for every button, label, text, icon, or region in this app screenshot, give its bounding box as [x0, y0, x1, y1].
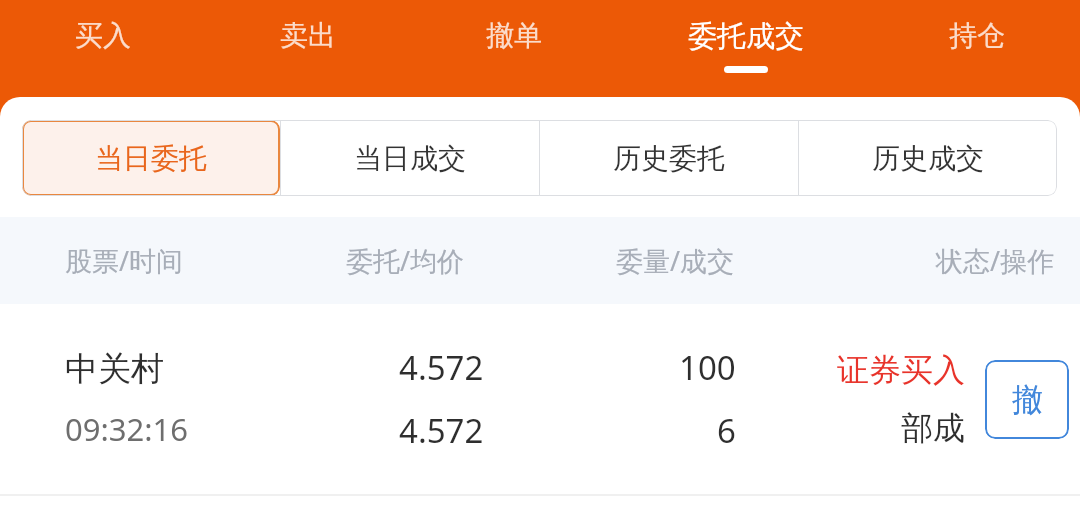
staticText: 委量/成交: [616, 242, 735, 279]
button[interactable]: 撤单: [985, 360, 1069, 439]
staticText: 股票/时间: [65, 242, 184, 279]
button[interactable]: 历史委托: [540, 120, 798, 196]
staticText: 中关村: [65, 348, 164, 390]
staticText: 历史委托: [613, 141, 725, 176]
staticText: 部成: [901, 408, 965, 448]
staticText: 持仓: [949, 18, 1005, 53]
staticText: 撤单: [486, 18, 542, 53]
staticText: 卖出: [280, 18, 336, 53]
button[interactable]: 持仓: [874, 0, 1080, 97]
button[interactable]: 中关村: [0, 304, 1080, 494]
staticText: 09:32:16: [65, 408, 189, 450]
button[interactable]: 委托成交: [617, 0, 874, 97]
button[interactable]: 撤单: [411, 0, 617, 97]
button[interactable]: 当日成交: [281, 120, 539, 196]
staticText: 历史成交: [872, 141, 984, 176]
button[interactable]: 卖出: [205, 0, 411, 97]
button[interactable]: 历史成交: [799, 120, 1057, 196]
button[interactable]: 买入: [0, 0, 205, 97]
staticText: 撤: [1012, 380, 1043, 419]
staticText: 委托/均价: [346, 242, 465, 279]
staticText: 当日成交: [354, 141, 466, 176]
staticText: 4.572: [399, 408, 484, 453]
staticText: 状态/操作: [936, 242, 1055, 279]
button[interactable]: 当日委托: [22, 120, 280, 196]
staticText: 证券买入: [837, 350, 965, 390]
staticText: 当日委托: [95, 141, 207, 176]
staticText: 买入: [75, 18, 131, 53]
staticText: 4.572: [399, 345, 484, 390]
staticText: 6: [717, 408, 736, 453]
staticText: 委托成交: [688, 18, 804, 55]
staticText: 100: [679, 345, 736, 390]
